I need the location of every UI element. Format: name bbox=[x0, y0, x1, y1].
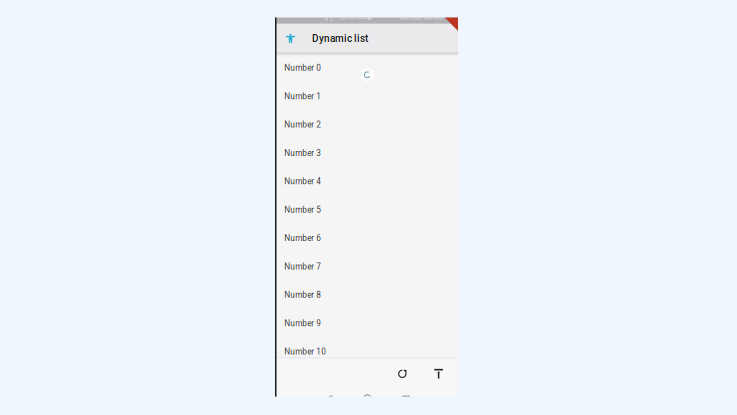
button[interactable]: Number 1 bbox=[275, 82, 458, 111]
staticText: Number 8 bbox=[284, 290, 321, 300]
button[interactable]: Number 7 bbox=[275, 252, 458, 281]
button[interactable]: Refresh bbox=[391, 363, 413, 385]
staticText: Number 5 bbox=[284, 205, 321, 215]
button[interactable]: Scroll to top bbox=[428, 363, 450, 385]
button[interactable]: Number 5 bbox=[275, 196, 458, 224]
button[interactable]: Number 3 bbox=[275, 139, 458, 167]
staticText: Number 3 bbox=[284, 148, 321, 158]
staticText: Number 1 bbox=[284, 91, 321, 101]
staticText: Number 7 bbox=[284, 262, 321, 271]
staticText: Number 0 bbox=[284, 63, 321, 73]
button[interactable]: Number 8 bbox=[275, 281, 458, 309]
button[interactable]: Number 9 bbox=[275, 309, 458, 337]
button[interactable]: Number 4 bbox=[275, 167, 458, 196]
button[interactable]: Accessibility bbox=[281, 29, 300, 48]
staticText: Number 10 bbox=[284, 347, 326, 356]
staticText: Number 2 bbox=[284, 120, 321, 130]
button[interactable]: Number 10 bbox=[275, 337, 458, 366]
button[interactable]: Dynamic list bbox=[312, 27, 384, 50]
button[interactable]: Number 6 bbox=[275, 224, 458, 252]
staticText: Number 4 bbox=[284, 177, 321, 186]
staticText: Number 6 bbox=[284, 233, 321, 243]
staticText: Number 9 bbox=[284, 318, 321, 328]
button[interactable]: Number 0 bbox=[275, 54, 458, 82]
button[interactable]: Number 2 bbox=[275, 110, 458, 139]
staticText: Dynamic list bbox=[312, 33, 368, 44]
